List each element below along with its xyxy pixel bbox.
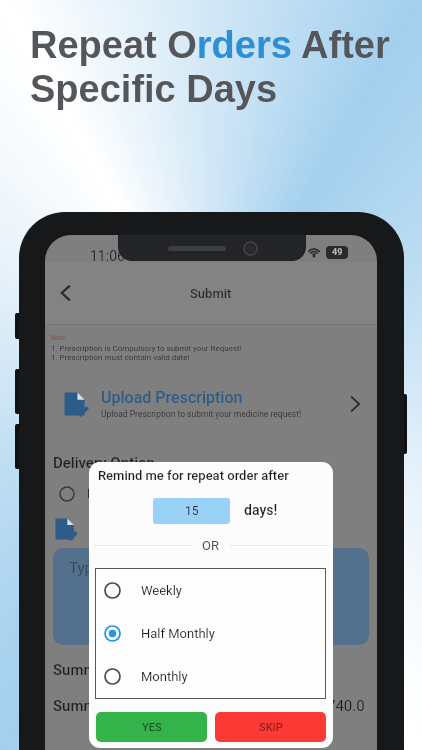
- staticText: days!: [244, 502, 278, 518]
- staticText: Summary: [53, 697, 118, 715]
- staticText: 15: [185, 504, 199, 518]
- staticText: OR: [202, 538, 219, 553]
- staticText: 11:06: [90, 248, 125, 264]
- button[interactable]: Monthly: [96, 655, 325, 698]
- button[interactable]: 15: [153, 498, 230, 524]
- button[interactable]: Weekly: [96, 569, 325, 612]
- staticText: Weekly: [141, 583, 183, 598]
- staticText: Upload Prescription to submit your medic…: [101, 409, 302, 419]
- button[interactable]: SKIP: [215, 712, 326, 742]
- staticText: SKIP: [259, 721, 283, 734]
- button[interactable]: Home Delivery: [59, 486, 377, 502]
- staticText: Home Delivery: [87, 487, 165, 501]
- staticText: Remind me for repeat order after: [98, 468, 289, 483]
- staticText: Type your request here: [69, 559, 221, 577]
- staticText: YES: [142, 721, 162, 734]
- button[interactable]: Back: [50, 277, 82, 309]
- staticText: 1. Prescription is Compulsory to submit …: [51, 344, 242, 353]
- staticText: Repeat Orders After Specific Days: [30, 24, 390, 110]
- button[interactable]: Upload Prescription: [45, 371, 377, 436]
- button[interactable]: YES: [96, 712, 207, 742]
- staticText: Summary: [53, 661, 118, 679]
- staticText: 1. Prescription must contain valid date!: [51, 353, 190, 362]
- staticText: Note: [51, 334, 66, 342]
- staticText: 740.0: [327, 697, 365, 715]
- staticText: Monthly: [141, 669, 188, 684]
- staticText: Upload Prescription: [101, 388, 243, 407]
- staticText: 49: [332, 247, 343, 258]
- staticText: Half Monthly: [141, 626, 215, 641]
- button[interactable]: Half Monthly: [96, 612, 325, 655]
- staticText: Submit: [190, 286, 232, 301]
- staticText: Delivery Option: [53, 454, 155, 472]
